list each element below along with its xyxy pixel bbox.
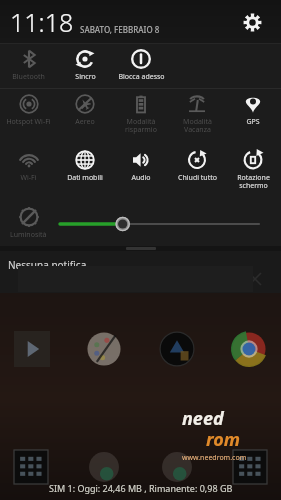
button[interactable]: App	[159, 331, 195, 367]
staticText: Nessuna notifica	[8, 258, 87, 272]
button[interactable]: App	[233, 450, 267, 484]
button[interactable]: Luminosità	[0, 201, 56, 246]
button[interactable]: Blocca adesso	[113, 44, 169, 88]
staticText: SABATO, FEBBRAIO 8	[80, 24, 160, 35]
staticText: Wi-Fi	[20, 173, 37, 183]
staticText: Blocca adesso	[118, 72, 165, 82]
button[interactable]: GPS	[225, 89, 281, 145]
staticText: www.needrom.com	[182, 453, 247, 463]
button[interactable]: App	[87, 450, 121, 484]
button[interactable]: Hotspot Wi-Fi	[0, 89, 57, 145]
button[interactable]: App	[160, 450, 194, 484]
staticText: Audio	[131, 173, 151, 183]
staticText: SIM 1: Oggi: 24,46 MB , Rimanente: 0,98 …	[49, 482, 233, 494]
button[interactable]: Sincro	[57, 44, 113, 88]
button[interactable]: Chiudi tutto	[169, 145, 225, 201]
staticText: Rotazione schermo	[237, 173, 270, 190]
staticText: Chiudi tutto	[178, 173, 217, 183]
button[interactable]: App	[14, 331, 50, 367]
staticText: GPS	[246, 117, 260, 127]
button[interactable]: Dati mobili	[57, 145, 113, 201]
button[interactable]: Modalità Vacanza	[169, 89, 225, 145]
button[interactable]: Rotazione schermo	[225, 145, 281, 201]
button[interactable]: Wi-Fi	[0, 145, 57, 201]
staticText: rom	[206, 427, 241, 452]
button[interactable]: Modalità risparmio	[113, 89, 169, 145]
staticText: Aereo	[75, 117, 95, 127]
staticText: Dati mobili	[67, 173, 103, 183]
button[interactable]: App	[86, 331, 122, 367]
button[interactable]: Brightness slider	[56, 201, 259, 246]
button[interactable]: Aereo	[57, 89, 113, 145]
staticText: Bluetooth	[12, 72, 45, 82]
button[interactable]: Settings	[237, 7, 267, 37]
button[interactable]: Bluetooth	[0, 44, 57, 88]
button[interactable]: Audio	[113, 145, 169, 201]
staticText: 11:18	[10, 5, 74, 39]
staticText: Hotspot Wi-Fi	[6, 117, 51, 127]
staticText: Modalità Vacanza	[183, 117, 212, 134]
button[interactable]: App	[14, 450, 48, 484]
staticText: Sincro	[75, 72, 96, 82]
staticText: Modalità risparmio	[125, 117, 157, 134]
staticText: Luminosità	[10, 230, 47, 240]
button[interactable]: App	[231, 331, 267, 367]
staticText: need	[182, 406, 224, 431]
